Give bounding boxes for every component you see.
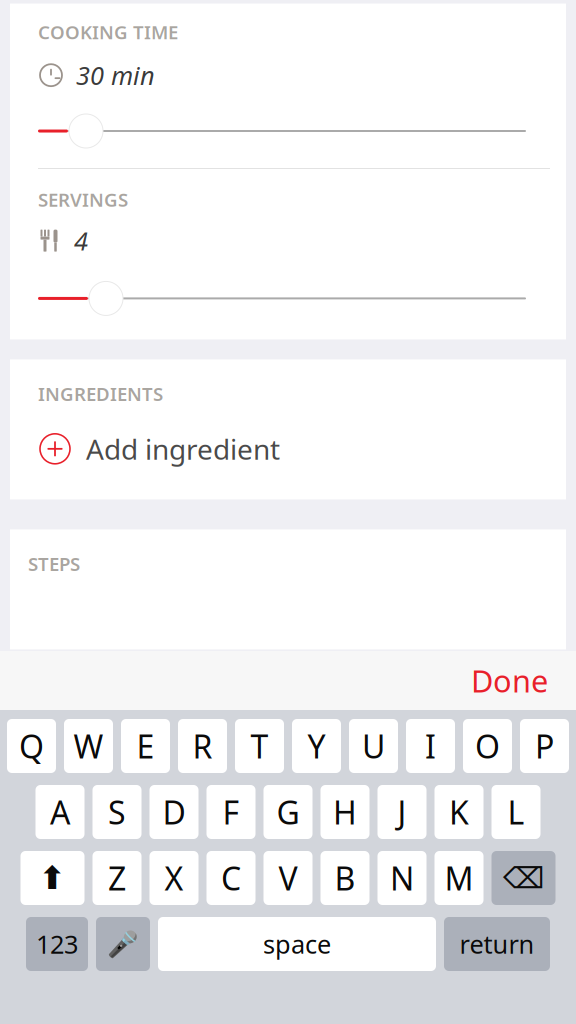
button[interactable]: J — [377, 785, 426, 839]
staticText: U — [362, 725, 385, 767]
staticText: COOKING TIME — [38, 20, 178, 44]
staticText: N — [390, 857, 414, 899]
button[interactable]: Shift — [20, 851, 84, 905]
staticText: P — [535, 725, 554, 767]
staticText: C — [221, 857, 241, 899]
staticText: D — [162, 791, 185, 833]
button[interactable]: V — [263, 851, 312, 905]
staticText: W — [73, 725, 103, 767]
button[interactable]: 123 — [26, 917, 88, 971]
button[interactable]: H — [320, 785, 369, 839]
staticText: INGREDIENTS — [38, 381, 163, 406]
staticText: Done — [471, 660, 548, 701]
staticText: S — [108, 791, 126, 833]
staticText: 4 — [74, 224, 88, 257]
staticText: STEPS — [28, 551, 80, 576]
button[interactable]: M — [434, 851, 483, 905]
staticText: V — [278, 857, 297, 899]
staticText: SERVINGS — [38, 187, 128, 212]
button[interactable]: D — [149, 785, 198, 839]
staticText: R — [192, 725, 212, 767]
staticText: ⌫ — [503, 861, 544, 895]
staticText: Add ingredient — [86, 430, 280, 467]
button[interactable]: B — [320, 851, 369, 905]
button[interactable]: P — [520, 719, 569, 773]
staticText: M — [444, 857, 473, 899]
staticText: E — [136, 725, 154, 767]
staticText: X — [164, 857, 183, 899]
staticText: return — [459, 927, 534, 961]
button[interactable]: E — [121, 719, 170, 773]
button[interactable]: R — [178, 719, 227, 773]
button[interactable]: A — [35, 785, 84, 839]
staticText: T — [250, 725, 268, 767]
staticText: O — [475, 725, 500, 767]
staticText: F — [222, 791, 239, 833]
button[interactable]: L — [491, 785, 540, 839]
button[interactable]: Delete — [491, 851, 555, 905]
staticText: 🎤 — [107, 929, 139, 958]
button[interactable]: Y — [292, 719, 341, 773]
staticText: G — [276, 791, 299, 833]
staticText: Z — [108, 857, 126, 899]
staticText: Q — [19, 725, 44, 767]
staticText: B — [334, 857, 355, 899]
button[interactable]: F — [206, 785, 255, 839]
button[interactable]: C — [206, 851, 255, 905]
staticText: 123 — [36, 927, 78, 961]
button[interactable]: Q — [7, 719, 56, 773]
button[interactable]: T — [235, 719, 284, 773]
button[interactable]: N — [377, 851, 426, 905]
staticText: 30 min — [76, 58, 155, 92]
staticText: A — [50, 791, 70, 833]
staticText: Y — [307, 725, 325, 767]
button[interactable]: Dictation — [96, 917, 150, 971]
button[interactable]: space — [158, 917, 436, 971]
button[interactable]: I — [406, 719, 455, 773]
button[interactable]: O — [463, 719, 512, 773]
staticText: ⬆ — [39, 860, 66, 896]
staticText: J — [397, 791, 406, 833]
staticText: space — [263, 927, 331, 961]
button[interactable]: Done — [455, 650, 564, 711]
staticText: K — [449, 791, 469, 833]
staticText: L — [507, 791, 524, 833]
button[interactable]: return — [444, 917, 550, 971]
button[interactable]: U — [349, 719, 398, 773]
button[interactable]: K — [434, 785, 483, 839]
button[interactable]: X — [149, 851, 198, 905]
button[interactable]: Z — [92, 851, 141, 905]
button[interactable]: W — [64, 719, 113, 773]
button[interactable]: S — [92, 785, 141, 839]
staticText: H — [333, 791, 357, 833]
button[interactable]: Add ingredient — [38, 422, 538, 475]
staticText: I — [425, 725, 436, 767]
button[interactable]: G — [263, 785, 312, 839]
